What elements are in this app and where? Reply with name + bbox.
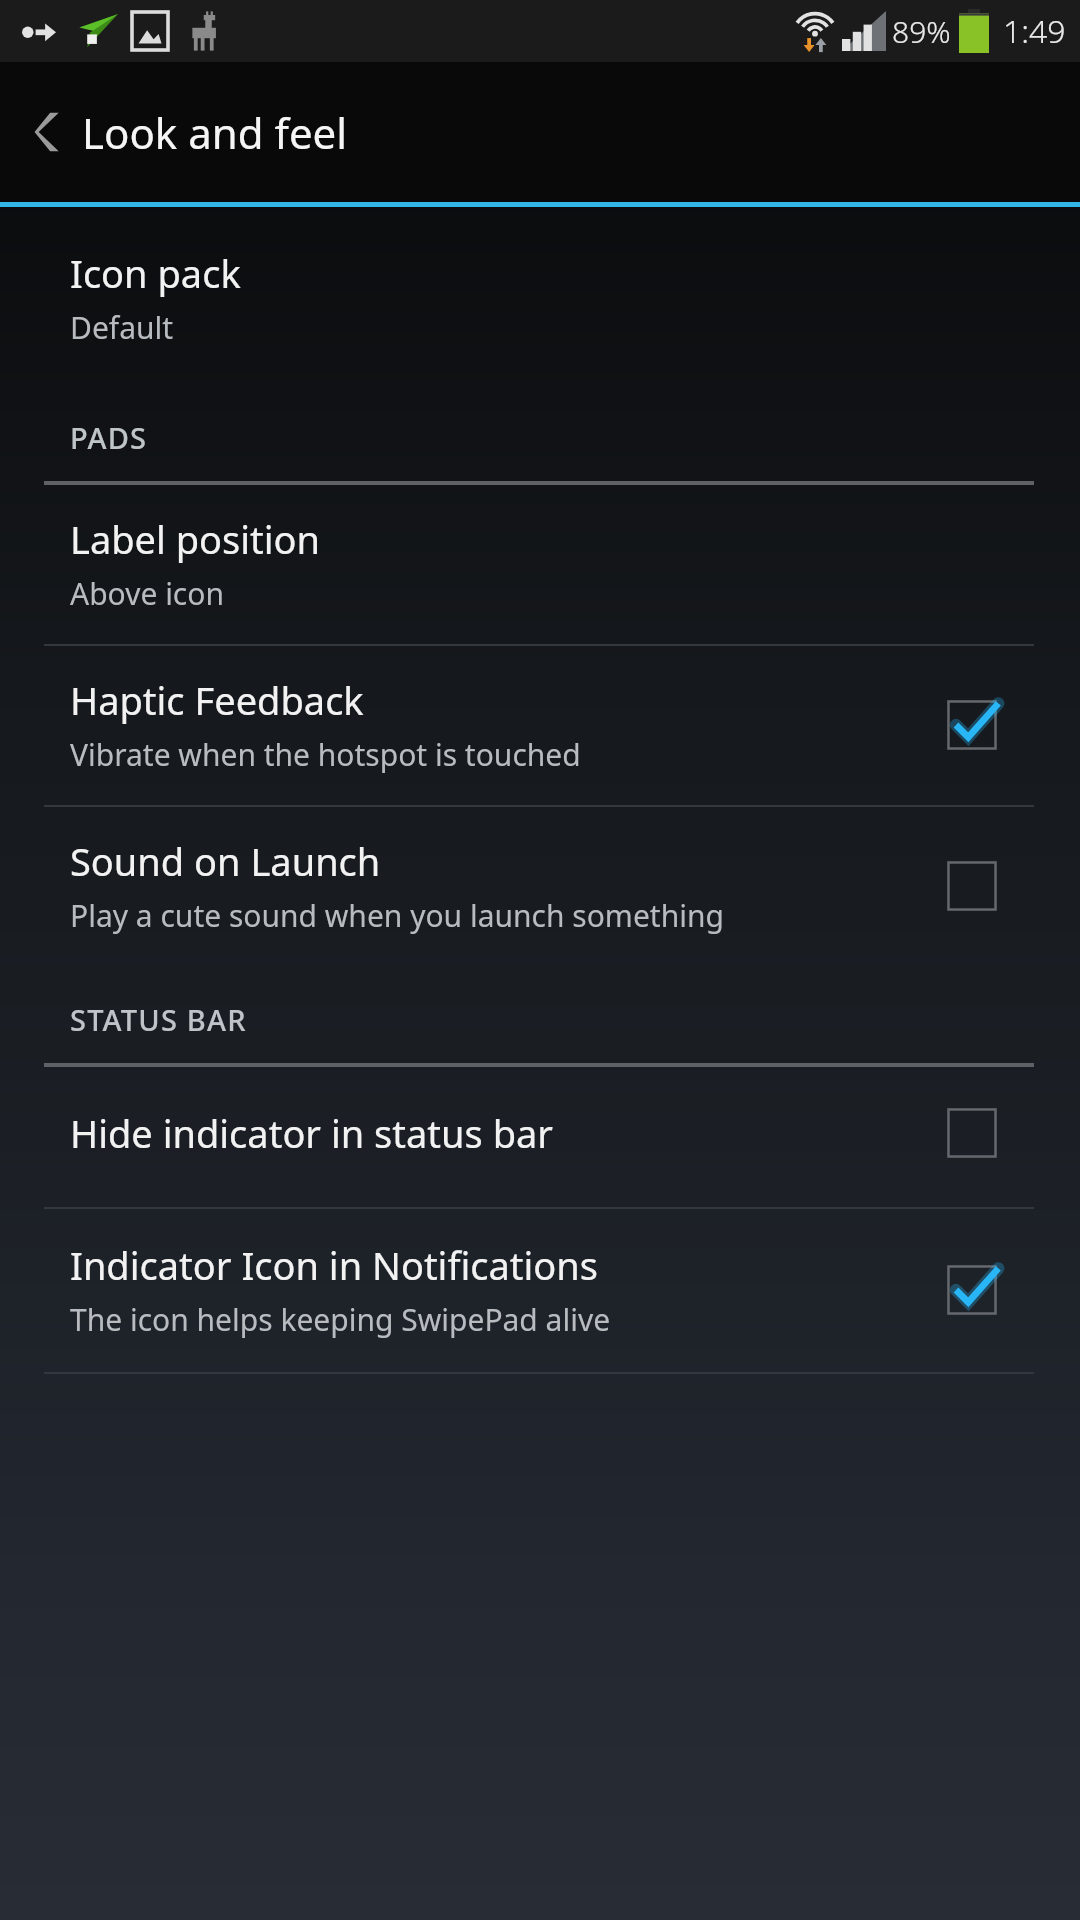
- other: Checked: [944, 697, 1000, 753]
- staticText: Default: [70, 307, 174, 348]
- button[interactable]: Label position: [0, 485, 1080, 644]
- staticText: Hide indicator in status bar: [70, 1107, 554, 1159]
- other: Unchecked: [944, 858, 1000, 914]
- button[interactable]: Sound on Launch: [0, 807, 1080, 966]
- staticText: Sound on Launch: [70, 835, 381, 887]
- staticText: 1:49: [1003, 9, 1066, 53]
- staticText: PADS: [70, 418, 148, 457]
- staticText: Haptic Feedback: [70, 674, 364, 726]
- staticText: Play a cute sound when you launch someth…: [70, 895, 724, 936]
- other: Checked: [944, 1262, 1000, 1318]
- staticText: Label position: [70, 513, 321, 565]
- button[interactable]: Icon pack: [0, 211, 1080, 384]
- staticText: 89%: [892, 11, 951, 52]
- staticText: Look and feel: [82, 104, 348, 161]
- staticText: Indicator Icon in Notifications: [70, 1239, 599, 1291]
- button[interactable]: Haptic Feedback: [0, 646, 1080, 805]
- button[interactable]: Indicator Icon in Notifications: [0, 1209, 1080, 1372]
- staticText: STATUS BAR: [70, 1000, 247, 1039]
- other: Unchecked: [944, 1105, 1000, 1161]
- other: Back: [34, 110, 60, 154]
- staticText: Above icon: [70, 573, 224, 614]
- staticText: Icon pack: [70, 247, 241, 299]
- button[interactable]: Hide indicator in status bar: [0, 1067, 1080, 1207]
- button[interactable]: Back: [0, 62, 1080, 202]
- staticText: The icon helps keeping SwipePad alive: [70, 1299, 611, 1340]
- staticText: Vibrate when the hotspot is touched: [70, 734, 581, 775]
